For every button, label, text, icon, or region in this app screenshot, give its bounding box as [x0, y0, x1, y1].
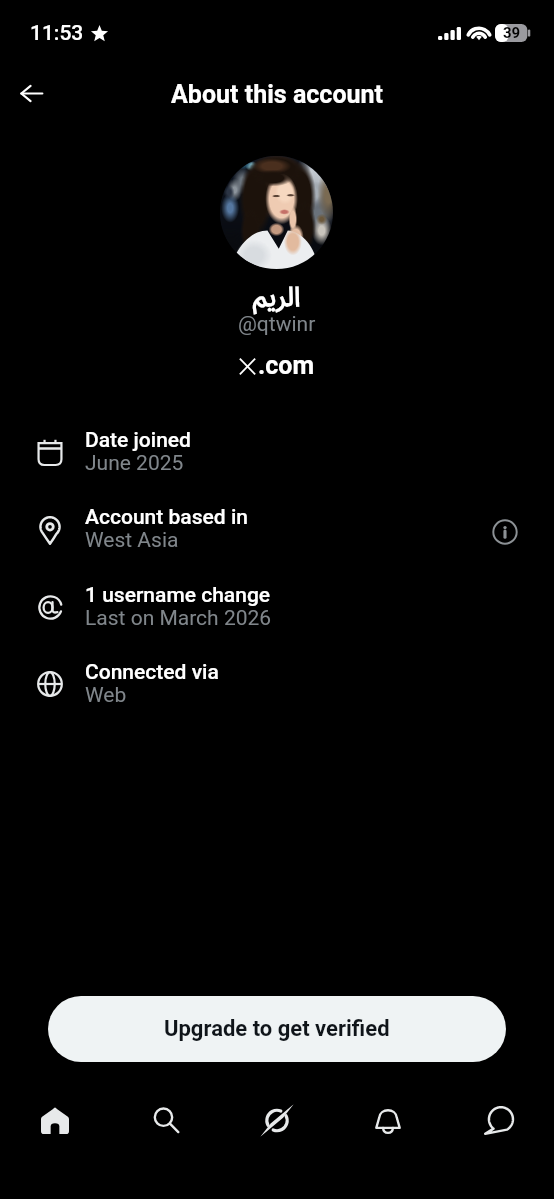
staticText: Date joined: [85, 428, 191, 453]
button[interactable]: Messages: [443, 1086, 554, 1154]
staticText: West Asia: [85, 528, 179, 553]
button[interactable]: Date joined: [0, 419, 554, 487]
staticText: 1 username change: [85, 583, 271, 608]
button[interactable]: Search: [110, 1086, 221, 1154]
button[interactable]: More info: [485, 512, 525, 552]
staticText: About this account: [171, 80, 383, 109]
staticText: 39: [503, 24, 521, 42]
button[interactable]: 1 username change: [0, 574, 554, 642]
button[interactable]: Account based in: [0, 496, 554, 564]
staticText: @qtwinr: [238, 312, 316, 337]
staticText: Web: [85, 683, 127, 708]
button[interactable]: Notifications: [332, 1086, 443, 1154]
staticText: Account based in: [85, 505, 248, 530]
staticText: Connected via: [85, 660, 219, 685]
button[interactable]: Connected via: [0, 651, 554, 719]
button[interactable]: Grok: [221, 1086, 332, 1154]
staticText: Upgrade to get verified: [164, 1016, 390, 1042]
button[interactable]: Upgrade to get verified: [48, 996, 506, 1062]
staticText: Last on March 2026: [85, 606, 272, 631]
staticText: .com: [258, 351, 315, 380]
staticText: June 2025: [85, 451, 184, 476]
button[interactable]: Home: [0, 1086, 110, 1154]
button[interactable]: Back: [8, 70, 54, 116]
staticText: الريم: [253, 277, 301, 314]
staticText: 11:53: [30, 21, 84, 46]
